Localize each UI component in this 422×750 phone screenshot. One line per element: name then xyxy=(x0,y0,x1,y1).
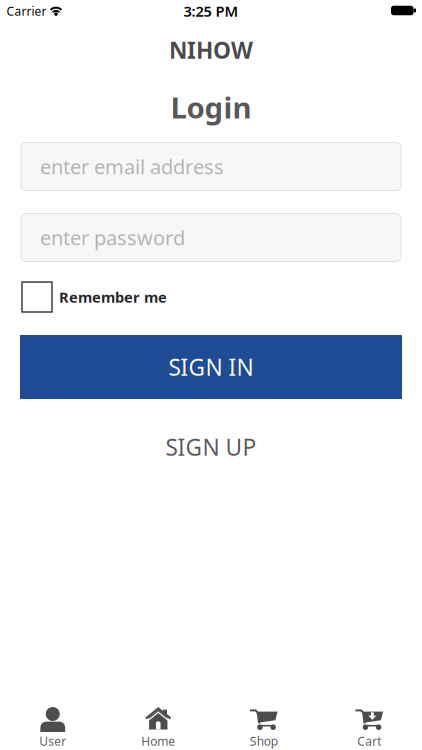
staticText: Login xyxy=(170,87,251,126)
staticText: Cart xyxy=(357,733,381,749)
button[interactable]: Cart xyxy=(316,706,422,749)
button[interactable]: enter email address xyxy=(21,142,401,190)
staticText: enter email address xyxy=(40,153,224,180)
button[interactable]: Shop xyxy=(211,706,316,749)
staticText: User xyxy=(39,733,66,749)
staticText: Shop xyxy=(250,733,278,749)
staticText: 3:25 PM xyxy=(183,1,238,21)
staticText: SIGN IN xyxy=(168,352,253,382)
button[interactable]: Remember me xyxy=(22,280,422,314)
staticText: Home xyxy=(141,733,175,749)
button[interactable]: Home xyxy=(105,706,211,749)
staticText: Remember me xyxy=(59,287,167,307)
button[interactable]: User xyxy=(0,706,105,749)
staticText: SIGN UP xyxy=(165,432,256,462)
button[interactable]: enter password xyxy=(21,213,401,261)
button[interactable]: SIGN IN xyxy=(20,335,402,399)
staticText: NIHOW xyxy=(169,35,253,65)
staticText: Carrier xyxy=(6,3,46,19)
staticText: enter password xyxy=(40,224,185,251)
button[interactable]: SIGN UP xyxy=(141,429,281,465)
